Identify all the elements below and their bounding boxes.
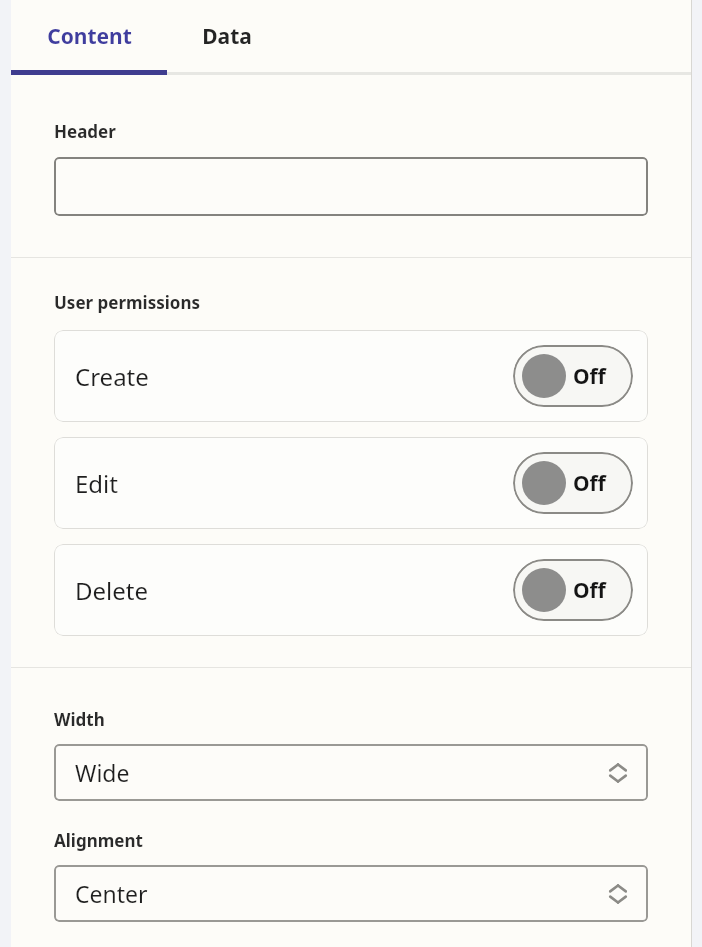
button[interactable]: Content bbox=[11, 0, 167, 72]
button[interactable]: Center bbox=[54, 865, 648, 922]
button[interactable]: Toggle off bbox=[513, 452, 633, 514]
staticText: Edit bbox=[75, 467, 118, 500]
button[interactable]: Toggle off bbox=[513, 345, 633, 407]
staticText: User permissions bbox=[54, 291, 201, 314]
staticText: Data bbox=[202, 22, 252, 51]
staticText: Center bbox=[75, 878, 148, 909]
button[interactable]: Data bbox=[167, 0, 287, 72]
button[interactable]: Create bbox=[54, 330, 648, 422]
staticText: Wide bbox=[75, 757, 130, 788]
staticText: Width bbox=[54, 708, 105, 731]
button[interactable] bbox=[54, 157, 648, 216]
staticText: Content bbox=[47, 22, 132, 51]
staticText: Delete bbox=[75, 574, 148, 607]
staticText: Off bbox=[573, 362, 606, 391]
button[interactable]: Toggle off bbox=[513, 559, 633, 621]
button[interactable]: Delete bbox=[54, 544, 648, 636]
staticText: Header bbox=[54, 120, 116, 143]
staticText: Off bbox=[573, 469, 606, 498]
staticText: Off bbox=[573, 576, 606, 605]
button[interactable]: Edit bbox=[54, 437, 648, 529]
staticText: Create bbox=[75, 360, 149, 393]
button[interactable]: Wide bbox=[54, 744, 648, 801]
staticText: Alignment bbox=[54, 829, 143, 852]
